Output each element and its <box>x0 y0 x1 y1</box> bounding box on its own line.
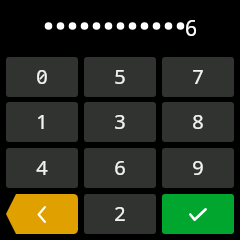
button[interactable]: 6 <box>84 148 156 188</box>
staticText: 6 <box>114 154 126 181</box>
button[interactable]: 9 <box>162 148 234 188</box>
button[interactable]: 1 <box>6 102 78 142</box>
button[interactable]: 0 <box>6 57 78 97</box>
staticText: 1 <box>36 108 48 135</box>
button[interactable]: 5 <box>84 57 156 97</box>
button[interactable]: Back <box>6 194 78 234</box>
staticText: 0 <box>36 63 48 90</box>
button[interactable]: 3 <box>84 102 156 142</box>
staticText: 7 <box>192 63 204 90</box>
staticText: 9 <box>192 154 204 181</box>
button[interactable]: 8 <box>162 102 234 142</box>
staticText: 3 <box>114 108 126 135</box>
button[interactable]: 2 <box>84 194 156 234</box>
button[interactable]: 7 <box>162 57 234 97</box>
staticText: 2 <box>114 200 126 227</box>
staticText: 5 <box>114 63 126 90</box>
button[interactable]: 4 <box>6 148 78 188</box>
staticText: 6 <box>185 14 198 38</box>
staticText: 4 <box>36 154 48 181</box>
staticText: 8 <box>192 108 204 135</box>
button[interactable]: Confirm <box>162 194 234 234</box>
